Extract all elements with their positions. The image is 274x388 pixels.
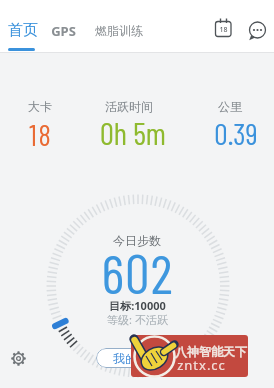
button[interactable]: 我的运动 [96, 348, 178, 368]
button[interactable]: 燃脂训练 [94, 18, 144, 43]
staticText: 大卡 [28, 99, 52, 114]
button[interactable]: 18 [212, 17, 234, 41]
staticText: 目标:10000 [109, 298, 166, 313]
button[interactable]: 首页 [0, 17, 45, 43]
staticText: 八神智能天下 [175, 344, 247, 359]
staticText: 0h 5m [100, 114, 166, 151]
button[interactable] [9, 349, 28, 368]
staticText: zntx.cc [177, 356, 226, 374]
staticText: 602 [101, 239, 174, 305]
staticText: 首页 [8, 21, 38, 40]
staticText: 公里 [218, 99, 242, 114]
staticText: 我的运动 [113, 351, 161, 366]
button[interactable]: GPS [48, 18, 78, 43]
staticText: 18 [219, 25, 228, 35]
staticText: 活跃时间 [105, 99, 153, 114]
staticText: GPS [51, 22, 76, 40]
staticText: 今日步数 [113, 233, 161, 248]
button[interactable] [248, 20, 268, 42]
staticText: 18 [29, 117, 53, 152]
staticText: 等级: 不活跃 [107, 312, 168, 327]
staticText: 燃脂训练 [95, 23, 143, 38]
staticText: 0.39 [214, 115, 258, 151]
